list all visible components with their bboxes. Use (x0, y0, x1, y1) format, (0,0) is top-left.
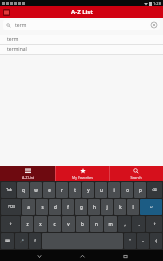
button[interactable]: v (62, 216, 75, 232)
button[interactable]: o (121, 182, 133, 198)
button[interactable]: k (114, 199, 126, 215)
staticText: Search (130, 175, 142, 180)
button[interactable]: n (90, 216, 103, 232)
button[interactable]: c (48, 216, 61, 232)
button[interactable]: p (134, 182, 146, 198)
staticText: u (100, 187, 103, 193)
staticText: My Favorites (72, 175, 93, 180)
staticText: i (113, 187, 115, 193)
button[interactable]: Tab (1, 182, 16, 198)
button[interactable]: b (76, 216, 89, 232)
staticText: - (142, 238, 144, 244)
staticText: ⇧ (9, 222, 12, 226)
button[interactable]: terminal (0, 45, 163, 55)
staticText: . (138, 221, 140, 227)
button[interactable]: s (36, 199, 48, 215)
staticText: term (7, 36, 19, 43)
button[interactable]: - (137, 233, 149, 249)
button[interactable]: f (29, 233, 41, 249)
button[interactable]: ?123 (1, 199, 21, 215)
button[interactable]: Home (77, 251, 87, 261)
staticText: w (34, 187, 38, 193)
button[interactable]: ⌫ (147, 182, 162, 198)
staticText: l (132, 204, 134, 210)
staticText: Tab (6, 188, 12, 192)
staticText: ' (129, 238, 131, 244)
button[interactable]: . (132, 216, 145, 232)
button[interactable]: Recents (120, 251, 130, 261)
button[interactable]: ' (124, 233, 136, 249)
button[interactable]: A-Z List (0, 166, 55, 181)
staticText: f (34, 239, 36, 243)
button[interactable]: ⌨ (1, 233, 14, 249)
staticText: ?123 (8, 205, 15, 209)
staticText: k (119, 204, 122, 210)
button[interactable]: , (118, 216, 131, 232)
staticText: y (87, 187, 90, 193)
button[interactable]: My Favorites (55, 166, 109, 181)
button[interactable]: ⇧ (1, 216, 20, 232)
button[interactable]: t (69, 182, 81, 198)
staticText: o (126, 187, 129, 193)
staticText: n (95, 221, 98, 227)
button[interactable]: ⇧ (146, 216, 162, 232)
staticText: e (48, 187, 51, 193)
button[interactable]: ›| (150, 233, 162, 249)
staticText: r (61, 187, 63, 193)
button[interactable]: i (108, 182, 120, 198)
button[interactable]: y (82, 182, 94, 198)
staticText: h (93, 204, 96, 210)
button[interactable]: term (3, 20, 160, 30)
staticText: f (67, 204, 69, 210)
staticText: ⇧ (153, 222, 156, 226)
staticText: b (81, 221, 84, 227)
button[interactable]: w (30, 182, 42, 198)
staticText: d (54, 204, 57, 210)
staticText: z (26, 221, 29, 227)
staticText: g (80, 204, 83, 210)
button[interactable]: Clear search (151, 22, 157, 28)
staticText: ↵ (150, 205, 153, 209)
staticText: ⌨ (5, 239, 10, 243)
staticText: p (139, 187, 142, 193)
staticText: t (74, 187, 76, 193)
button[interactable]: App icon (3, 9, 10, 16)
staticText: 1:28 (153, 1, 161, 6)
staticText: ⌫ (152, 188, 157, 192)
button[interactable]: g (75, 199, 87, 215)
button[interactable]: j (101, 199, 113, 215)
staticText: , (124, 221, 126, 227)
staticText: j (106, 204, 108, 210)
button[interactable]: term (0, 35, 163, 45)
button[interactable]: x (34, 216, 47, 232)
staticText: c (53, 221, 56, 227)
button[interactable]: e (43, 182, 55, 198)
button[interactable]: Back (34, 251, 44, 261)
staticText: A-Z List (71, 8, 93, 16)
staticText: m (108, 221, 113, 227)
button[interactable]: h (88, 199, 100, 215)
button[interactable]: a (22, 199, 35, 215)
staticText: term (15, 22, 27, 29)
button[interactable]: Search (109, 166, 163, 181)
staticText: v (67, 221, 70, 227)
staticText: 🎤 (20, 239, 24, 243)
button[interactable]: 🎤 (15, 233, 28, 249)
button[interactable]: d (49, 199, 61, 215)
button[interactable]: m (104, 216, 117, 232)
button[interactable]: f (62, 199, 74, 215)
button[interactable]: ↵ (140, 199, 162, 215)
staticText: ›| (155, 239, 158, 243)
button[interactable]: u (95, 182, 107, 198)
staticText: terminal (7, 46, 27, 53)
button[interactable]: q (17, 182, 29, 198)
button[interactable]: z (21, 216, 33, 232)
staticText: q (22, 187, 25, 193)
staticText: A-Z List (22, 175, 34, 180)
button[interactable]: l (127, 199, 139, 215)
staticText: s (41, 204, 44, 210)
staticText: x (39, 221, 42, 227)
button[interactable]: r (56, 182, 68, 198)
staticText: a (27, 204, 30, 210)
